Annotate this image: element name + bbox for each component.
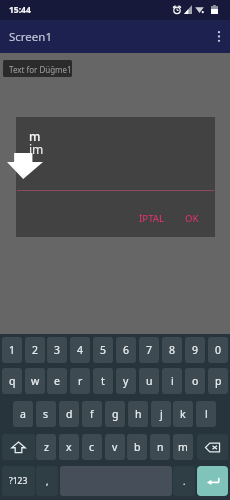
staticText: 8	[169, 343, 176, 357]
staticText: im	[29, 141, 44, 157]
button[interactable]: ,	[36, 466, 58, 496]
button[interactable]: c	[82, 434, 102, 460]
staticText: j	[160, 407, 163, 421]
button[interactable]: More options	[207, 20, 230, 53]
button[interactable]: t	[93, 368, 113, 394]
button[interactable]: 8	[162, 337, 182, 363]
staticText: p	[215, 374, 222, 388]
staticText: u	[146, 374, 153, 388]
button[interactable]: Text for Düğme1	[3, 60, 72, 77]
staticText: h	[135, 407, 142, 421]
staticText: ,	[46, 475, 49, 487]
staticText: y	[123, 374, 129, 388]
staticText: x	[66, 440, 72, 454]
staticText: b	[134, 440, 141, 454]
button[interactable]: x	[59, 434, 79, 460]
button[interactable]: y	[116, 368, 136, 394]
staticText: s	[43, 407, 49, 421]
button[interactable]: Shift	[2, 434, 35, 460]
button[interactable]: .	[173, 466, 195, 496]
staticText: r	[78, 374, 83, 388]
staticText: v	[112, 440, 118, 454]
button[interactable]: n	[150, 434, 170, 460]
staticText: 2	[32, 343, 39, 357]
button[interactable]: e	[47, 368, 67, 394]
staticText: q	[9, 374, 16, 388]
button[interactable]: w	[25, 368, 45, 394]
button[interactable]: o	[185, 368, 205, 394]
staticText: Text for Düğme1	[9, 64, 72, 75]
staticText: 1	[9, 343, 16, 357]
button[interactable]: 5	[93, 337, 113, 363]
staticText: d	[66, 407, 73, 421]
staticText: 15:44	[9, 4, 31, 16]
staticText: 7	[146, 343, 153, 357]
button[interactable]: i	[162, 368, 182, 394]
staticText: 0	[215, 343, 222, 357]
button[interactable]: h	[128, 401, 148, 427]
button[interactable]: q	[2, 368, 22, 394]
staticText: İPTAL	[139, 212, 165, 225]
button[interactable]: 4	[70, 337, 90, 363]
staticText: c	[89, 440, 95, 454]
button[interactable]: OK	[178, 205, 206, 231]
staticText: f	[90, 407, 94, 421]
button[interactable]: r	[70, 368, 90, 394]
staticText: 6	[123, 343, 130, 357]
staticText: 9	[192, 343, 199, 357]
button[interactable]: 7	[139, 337, 159, 363]
button[interactable]: k	[173, 401, 193, 427]
button[interactable]: m	[173, 434, 193, 460]
staticText: 3	[54, 343, 61, 357]
button[interactable]: 6	[116, 337, 136, 363]
staticText: 4	[77, 343, 84, 357]
button[interactable]: b	[127, 434, 147, 460]
button[interactable]: 1	[2, 337, 22, 363]
staticText: ?123	[9, 475, 28, 487]
button[interactable]: 2	[25, 337, 45, 363]
button[interactable]: u	[139, 368, 159, 394]
staticText: OK	[185, 212, 199, 225]
button[interactable]: s	[36, 401, 56, 427]
button[interactable]: Backspace	[197, 434, 228, 460]
staticText: m	[29, 128, 41, 144]
button[interactable]: 9	[185, 337, 205, 363]
button[interactable]: z	[36, 434, 56, 460]
staticText: k	[180, 407, 186, 421]
button[interactable]: p	[208, 368, 228, 394]
button[interactable]: İPTAL	[128, 205, 176, 231]
staticText: g	[112, 407, 119, 421]
button[interactable]: Enter	[197, 466, 228, 496]
button[interactable]: d	[59, 401, 79, 427]
staticText: i	[171, 374, 174, 388]
staticText: o	[192, 374, 199, 388]
staticText: z	[44, 440, 49, 454]
button[interactable]: g	[105, 401, 125, 427]
button[interactable]: 3	[47, 337, 67, 363]
staticText: l	[205, 407, 208, 421]
button[interactable]: j	[151, 401, 171, 427]
button[interactable]: l	[196, 401, 216, 427]
staticText: .	[183, 475, 186, 487]
staticText: 5	[100, 343, 107, 357]
staticText: w	[31, 374, 40, 388]
button[interactable]: 0	[208, 337, 228, 363]
button[interactable]: a	[13, 401, 33, 427]
staticText: n	[157, 440, 164, 454]
staticText: t	[101, 374, 105, 388]
staticText: a	[20, 407, 26, 421]
staticText: Screen1	[9, 29, 53, 45]
staticText: m	[178, 440, 188, 454]
button[interactable]: f	[82, 401, 102, 427]
staticText: e	[54, 374, 60, 388]
button[interactable]: ?123	[2, 466, 35, 496]
button[interactable]: v	[105, 434, 125, 460]
